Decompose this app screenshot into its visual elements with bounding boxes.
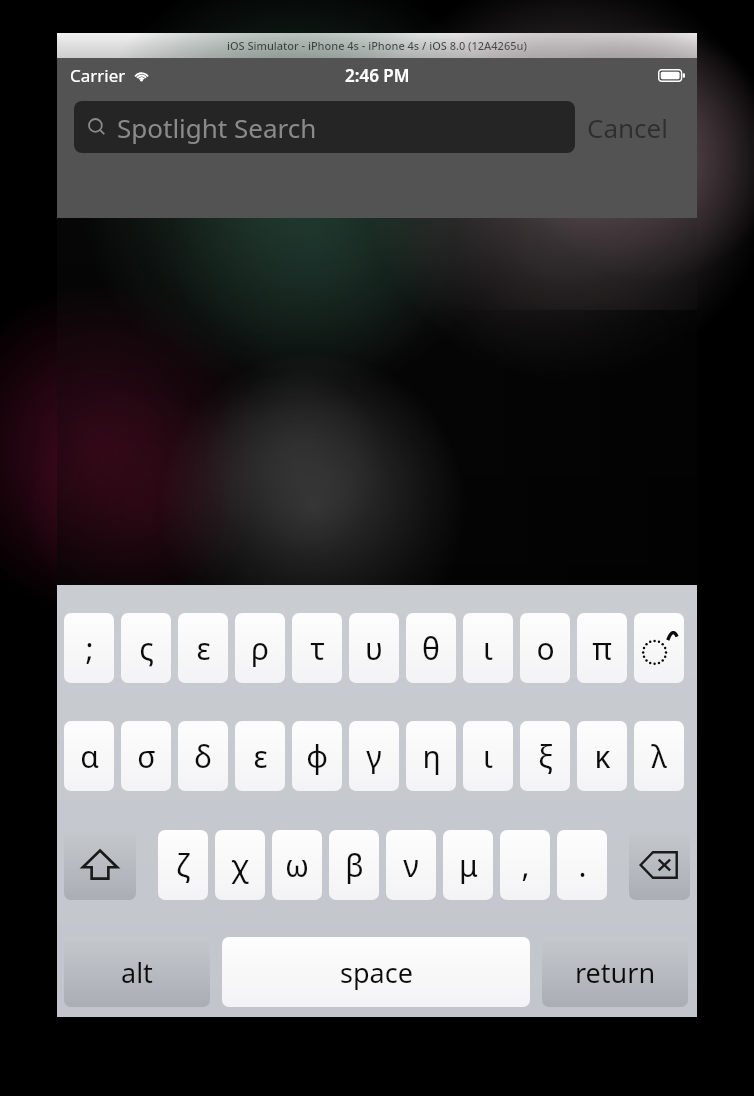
button[interactable]: Shift bbox=[64, 830, 136, 900]
staticText: ε bbox=[253, 736, 268, 777]
staticText: iOS Simulator - iPhone 4s - iPhone 4s / … bbox=[227, 38, 527, 53]
button[interactable]: Backspace bbox=[629, 830, 690, 900]
staticText: μ bbox=[459, 845, 478, 886]
staticText: , bbox=[521, 845, 530, 886]
staticText: β bbox=[345, 845, 364, 886]
button[interactable]: , bbox=[500, 830, 550, 900]
button[interactable]: Spotlight Search bbox=[74, 101, 575, 153]
button[interactable]: return bbox=[542, 937, 688, 1007]
staticText: α bbox=[80, 736, 99, 777]
staticText: ζ bbox=[176, 845, 190, 886]
button[interactable]: ε bbox=[235, 721, 285, 791]
staticText: κ bbox=[594, 736, 611, 777]
staticText: ρ bbox=[251, 628, 269, 669]
staticText: γ bbox=[366, 736, 382, 777]
button[interactable]: . bbox=[557, 830, 607, 900]
button[interactable]: Accent bbox=[634, 613, 684, 683]
button[interactable]: ο bbox=[520, 613, 570, 683]
staticText: ι bbox=[483, 736, 493, 777]
staticText: ξ bbox=[538, 736, 553, 777]
staticText: 2:46 PM bbox=[345, 64, 410, 87]
staticText: φ bbox=[306, 736, 328, 777]
staticText: π bbox=[592, 628, 612, 669]
button[interactable]: υ bbox=[349, 613, 399, 683]
staticText: Spotlight Search bbox=[117, 110, 317, 145]
staticText: ; bbox=[85, 628, 94, 669]
staticText: ο bbox=[536, 628, 555, 669]
staticText: alt bbox=[121, 954, 153, 991]
button[interactable]: σ bbox=[121, 721, 171, 791]
staticText: Cancel bbox=[587, 110, 668, 145]
button[interactable]: χ bbox=[215, 830, 265, 900]
staticText: Carrier bbox=[70, 64, 126, 87]
button[interactable]: ζ bbox=[158, 830, 208, 900]
button[interactable]: ξ bbox=[520, 721, 570, 791]
button[interactable]: δ bbox=[178, 721, 228, 791]
button[interactable]: ι bbox=[463, 613, 513, 683]
button[interactable]: μ bbox=[443, 830, 493, 900]
staticText: σ bbox=[137, 736, 156, 777]
staticText: ε bbox=[196, 628, 211, 669]
button[interactable]: Cancel bbox=[575, 102, 680, 153]
button[interactable]: space bbox=[222, 937, 530, 1007]
staticText: τ bbox=[310, 628, 325, 669]
staticText: . bbox=[578, 845, 587, 886]
button[interactable]: ρ bbox=[235, 613, 285, 683]
button[interactable]: ν bbox=[386, 830, 436, 900]
button[interactable]: ς bbox=[121, 613, 171, 683]
button[interactable]: π bbox=[577, 613, 627, 683]
staticText: ν bbox=[403, 845, 419, 886]
staticText: δ bbox=[194, 736, 212, 777]
staticText: space bbox=[340, 954, 413, 991]
button[interactable]: η bbox=[406, 721, 456, 791]
button[interactable]: β bbox=[329, 830, 379, 900]
button[interactable]: α bbox=[64, 721, 114, 791]
button[interactable]: ε bbox=[178, 613, 228, 683]
button[interactable]: alt bbox=[64, 937, 210, 1007]
staticText: χ bbox=[231, 845, 249, 886]
staticText: λ bbox=[651, 736, 667, 777]
button[interactable]: γ bbox=[349, 721, 399, 791]
button[interactable]: λ bbox=[634, 721, 684, 791]
staticText: ι bbox=[483, 628, 493, 669]
button[interactable]: ω bbox=[272, 830, 322, 900]
staticText: ω bbox=[285, 845, 309, 886]
staticText: return bbox=[575, 954, 656, 991]
button[interactable]: ι bbox=[463, 721, 513, 791]
staticText: ς bbox=[139, 628, 154, 669]
button[interactable]: κ bbox=[577, 721, 627, 791]
button[interactable]: ; bbox=[64, 613, 114, 683]
staticText: θ bbox=[422, 628, 440, 669]
staticText: υ bbox=[365, 628, 383, 669]
staticText: η bbox=[422, 736, 441, 777]
button[interactable]: τ bbox=[292, 613, 342, 683]
button[interactable]: θ bbox=[406, 613, 456, 683]
button[interactable]: φ bbox=[292, 721, 342, 791]
